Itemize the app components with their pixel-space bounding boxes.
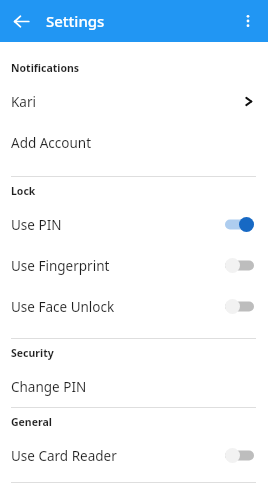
staticText: Kari bbox=[11, 93, 36, 111]
staticText: Use Card Reader bbox=[11, 447, 117, 465]
staticText: Lock bbox=[11, 184, 36, 198]
button[interactable]: Change PIN bbox=[0, 366, 268, 407]
button[interactable]: Kari bbox=[0, 81, 268, 122]
button[interactable]: Back bbox=[6, 6, 36, 36]
staticText: Settings bbox=[46, 11, 105, 31]
button[interactable]: Use Face Unlock bbox=[0, 286, 268, 327]
staticText: General bbox=[11, 415, 52, 429]
staticText: Notifications bbox=[11, 61, 80, 75]
button[interactable]: Use PIN bbox=[0, 204, 268, 245]
staticText: Use PIN bbox=[11, 216, 62, 234]
staticText: Use Fingerprint bbox=[11, 257, 110, 275]
button[interactable]: Add Account bbox=[0, 122, 268, 163]
staticText: Use Face Unlock bbox=[11, 298, 115, 316]
button[interactable]: Use Card Reader bbox=[0, 435, 268, 476]
button[interactable]: Use Fingerprint bbox=[0, 245, 268, 286]
staticText: Change PIN bbox=[11, 378, 87, 396]
button[interactable]: More options bbox=[233, 6, 263, 36]
staticText: Security bbox=[11, 346, 54, 360]
staticText: Add Account bbox=[11, 134, 92, 152]
